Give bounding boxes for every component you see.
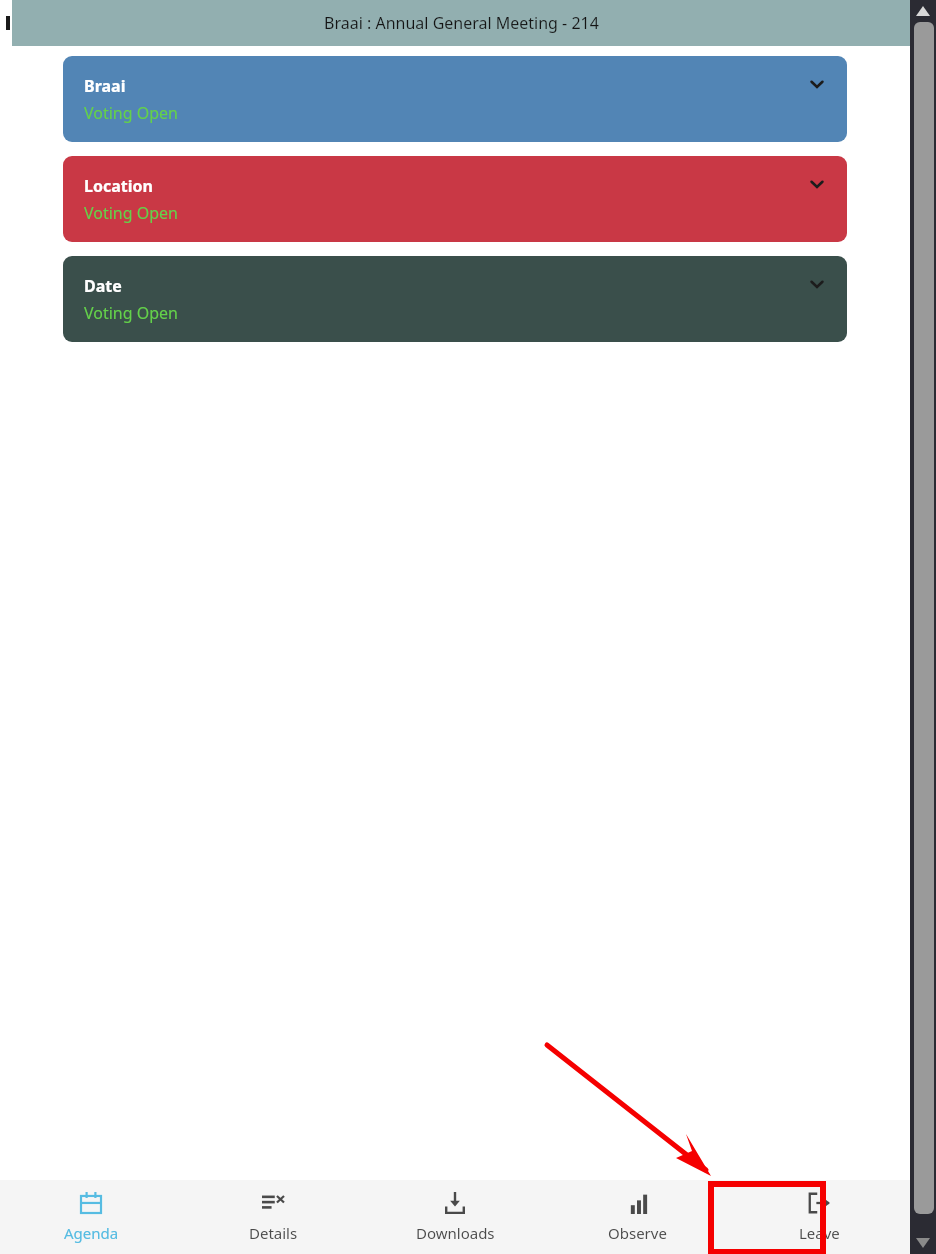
staticText: Downloads: [416, 1223, 495, 1243]
staticText: Location: [84, 175, 153, 197]
button[interactable]: Agenda: [0, 1180, 182, 1254]
staticText: Date: [84, 275, 122, 297]
staticText: Voting Open: [84, 302, 179, 324]
button[interactable]: Location: [63, 156, 847, 242]
button[interactable]: Downloads: [364, 1180, 546, 1254]
staticText: Observe: [608, 1223, 667, 1243]
staticText: Voting Open: [84, 202, 179, 224]
button[interactable]: Observe: [546, 1180, 728, 1254]
button[interactable]: Details: [182, 1180, 364, 1254]
button[interactable]: Date: [63, 256, 847, 342]
staticText: Agenda: [64, 1223, 119, 1243]
staticText: Voting Open: [84, 102, 179, 124]
button[interactable]: Leave: [728, 1180, 910, 1254]
staticText: Braai: [84, 75, 126, 97]
staticText: Details: [249, 1223, 298, 1243]
staticText: Braai : Annual General Meeting - 214: [324, 12, 599, 34]
staticText: Leave: [799, 1223, 840, 1243]
button[interactable]: Braai: [63, 56, 847, 142]
